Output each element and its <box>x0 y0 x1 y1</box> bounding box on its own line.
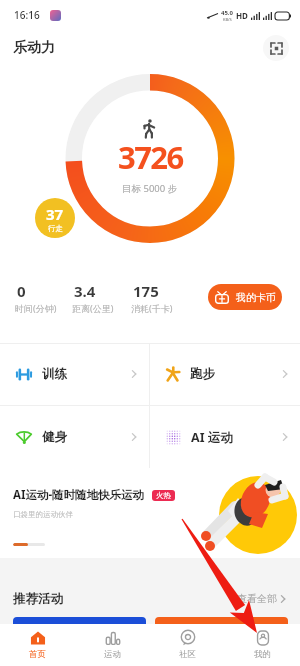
staticText: 运动 <box>104 649 121 660</box>
button[interactable]: 健身 <box>0 406 149 468</box>
staticText: 我的卡币 <box>236 291 276 304</box>
button[interactable]: 训练 <box>0 343 149 405</box>
staticText: 推荐活动 <box>13 591 63 607</box>
staticText: 跑步 <box>190 366 215 382</box>
button[interactable]: 首页 <box>0 624 75 666</box>
staticText: 距离(公里) <box>72 302 114 314</box>
staticText: 首页 <box>29 649 46 660</box>
button[interactable]: 社区 <box>150 624 225 666</box>
staticText: 3.4 <box>74 281 96 301</box>
staticText: 健身 <box>42 429 67 445</box>
staticText: 我的 <box>254 649 271 660</box>
staticText: 时间(分钟) <box>15 302 57 314</box>
button[interactable]: 我的 <box>225 624 300 666</box>
staticText: 社区 <box>179 649 196 660</box>
staticText: 16:16 <box>14 8 40 22</box>
staticText: 乐动力 <box>13 39 55 57</box>
staticText: 目标 5000 步 <box>122 182 178 195</box>
staticText: 火热 <box>156 491 171 500</box>
button[interactable]: 我的卡币 <box>208 284 282 310</box>
staticText: 175 <box>133 281 159 301</box>
staticText: 3726 <box>118 136 183 178</box>
button[interactable]: 37 <box>35 198 75 238</box>
staticText: 37 <box>46 204 64 224</box>
button[interactable]: AI 运动 <box>150 406 300 468</box>
staticText: 训练 <box>42 366 67 382</box>
button[interactable]: Scan <box>263 35 289 61</box>
button[interactable]: 跑步 <box>150 343 300 405</box>
staticText: AI运动-随时随地快乐运动 <box>13 487 145 503</box>
button[interactable]: 查看全部 <box>237 592 287 605</box>
staticText: AI 运动 <box>191 429 233 446</box>
staticText: 查看全部 <box>237 592 277 605</box>
staticText: 45.0 <box>221 9 233 17</box>
button[interactable]: AI运动-随时随地快乐运动 <box>0 478 300 557</box>
staticText: 行走 <box>48 224 63 233</box>
staticText: 口袋里的运动伙伴 <box>13 510 73 519</box>
staticText: 消耗(千卡) <box>131 302 173 314</box>
staticText: HD <box>236 10 248 21</box>
button[interactable]: 运动 <box>75 624 150 666</box>
staticText: 0 <box>17 281 26 301</box>
staticText: KB/S <box>223 17 232 22</box>
